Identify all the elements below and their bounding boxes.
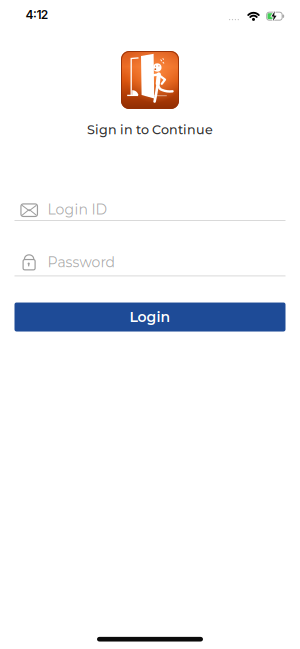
staticText: Login ID (47, 201, 107, 218)
button[interactable]: Login ID (14, 194, 285, 221)
staticText: Login (129, 308, 170, 326)
button[interactable]: Login (14, 302, 285, 331)
button[interactable]: Password (14, 250, 285, 277)
staticText: Password (47, 254, 114, 271)
staticText: Sign in to Continue (87, 122, 213, 137)
staticText: 4:12 (26, 7, 48, 22)
